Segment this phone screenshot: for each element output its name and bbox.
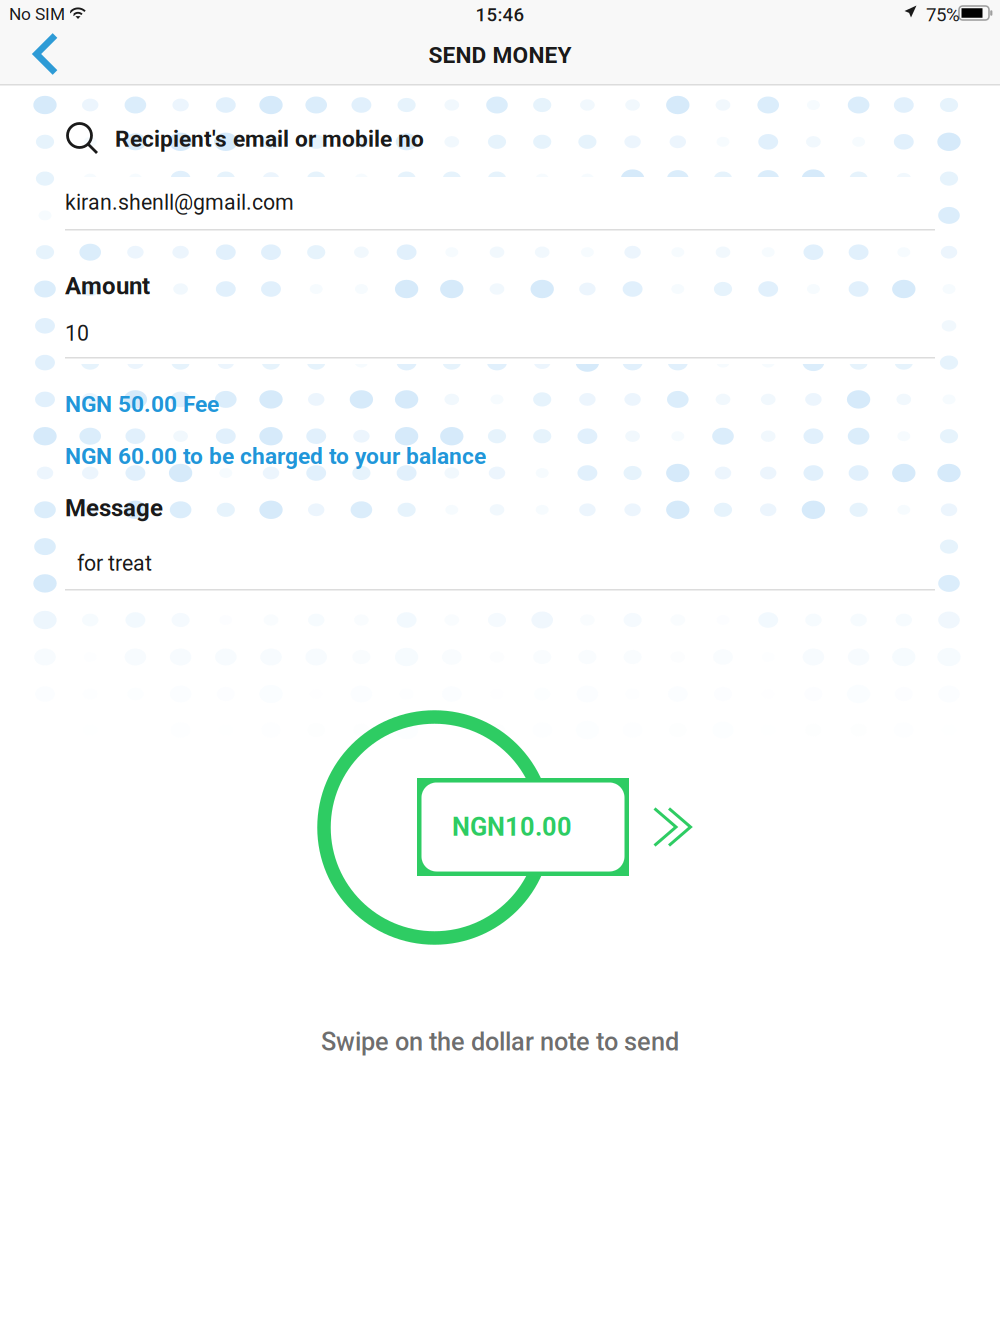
staticText: for treat xyxy=(77,551,152,576)
staticText: Message xyxy=(65,494,163,522)
button[interactable]: Send NGN10.00 xyxy=(0,0,212,98)
staticText: 15:46 xyxy=(475,4,524,26)
staticText: No SIM xyxy=(9,4,65,24)
staticText: 10 xyxy=(65,321,89,346)
staticText: SEND MONEY xyxy=(428,42,571,69)
staticText: Amount xyxy=(65,272,150,300)
staticText: 75% xyxy=(926,4,960,26)
staticText: Recipient's email or mobile no xyxy=(115,126,424,152)
staticText: kiran.shenll@gmail.com xyxy=(65,190,294,215)
staticText: NGN10.00 xyxy=(452,812,572,842)
staticText: NGN 60.00 to be charged to your balance xyxy=(65,443,486,470)
staticText: NGN 50.00 Fee xyxy=(65,391,219,418)
button[interactable]: Back xyxy=(0,32,112,84)
staticText: Swipe on the dollar note to send xyxy=(321,1027,679,1057)
